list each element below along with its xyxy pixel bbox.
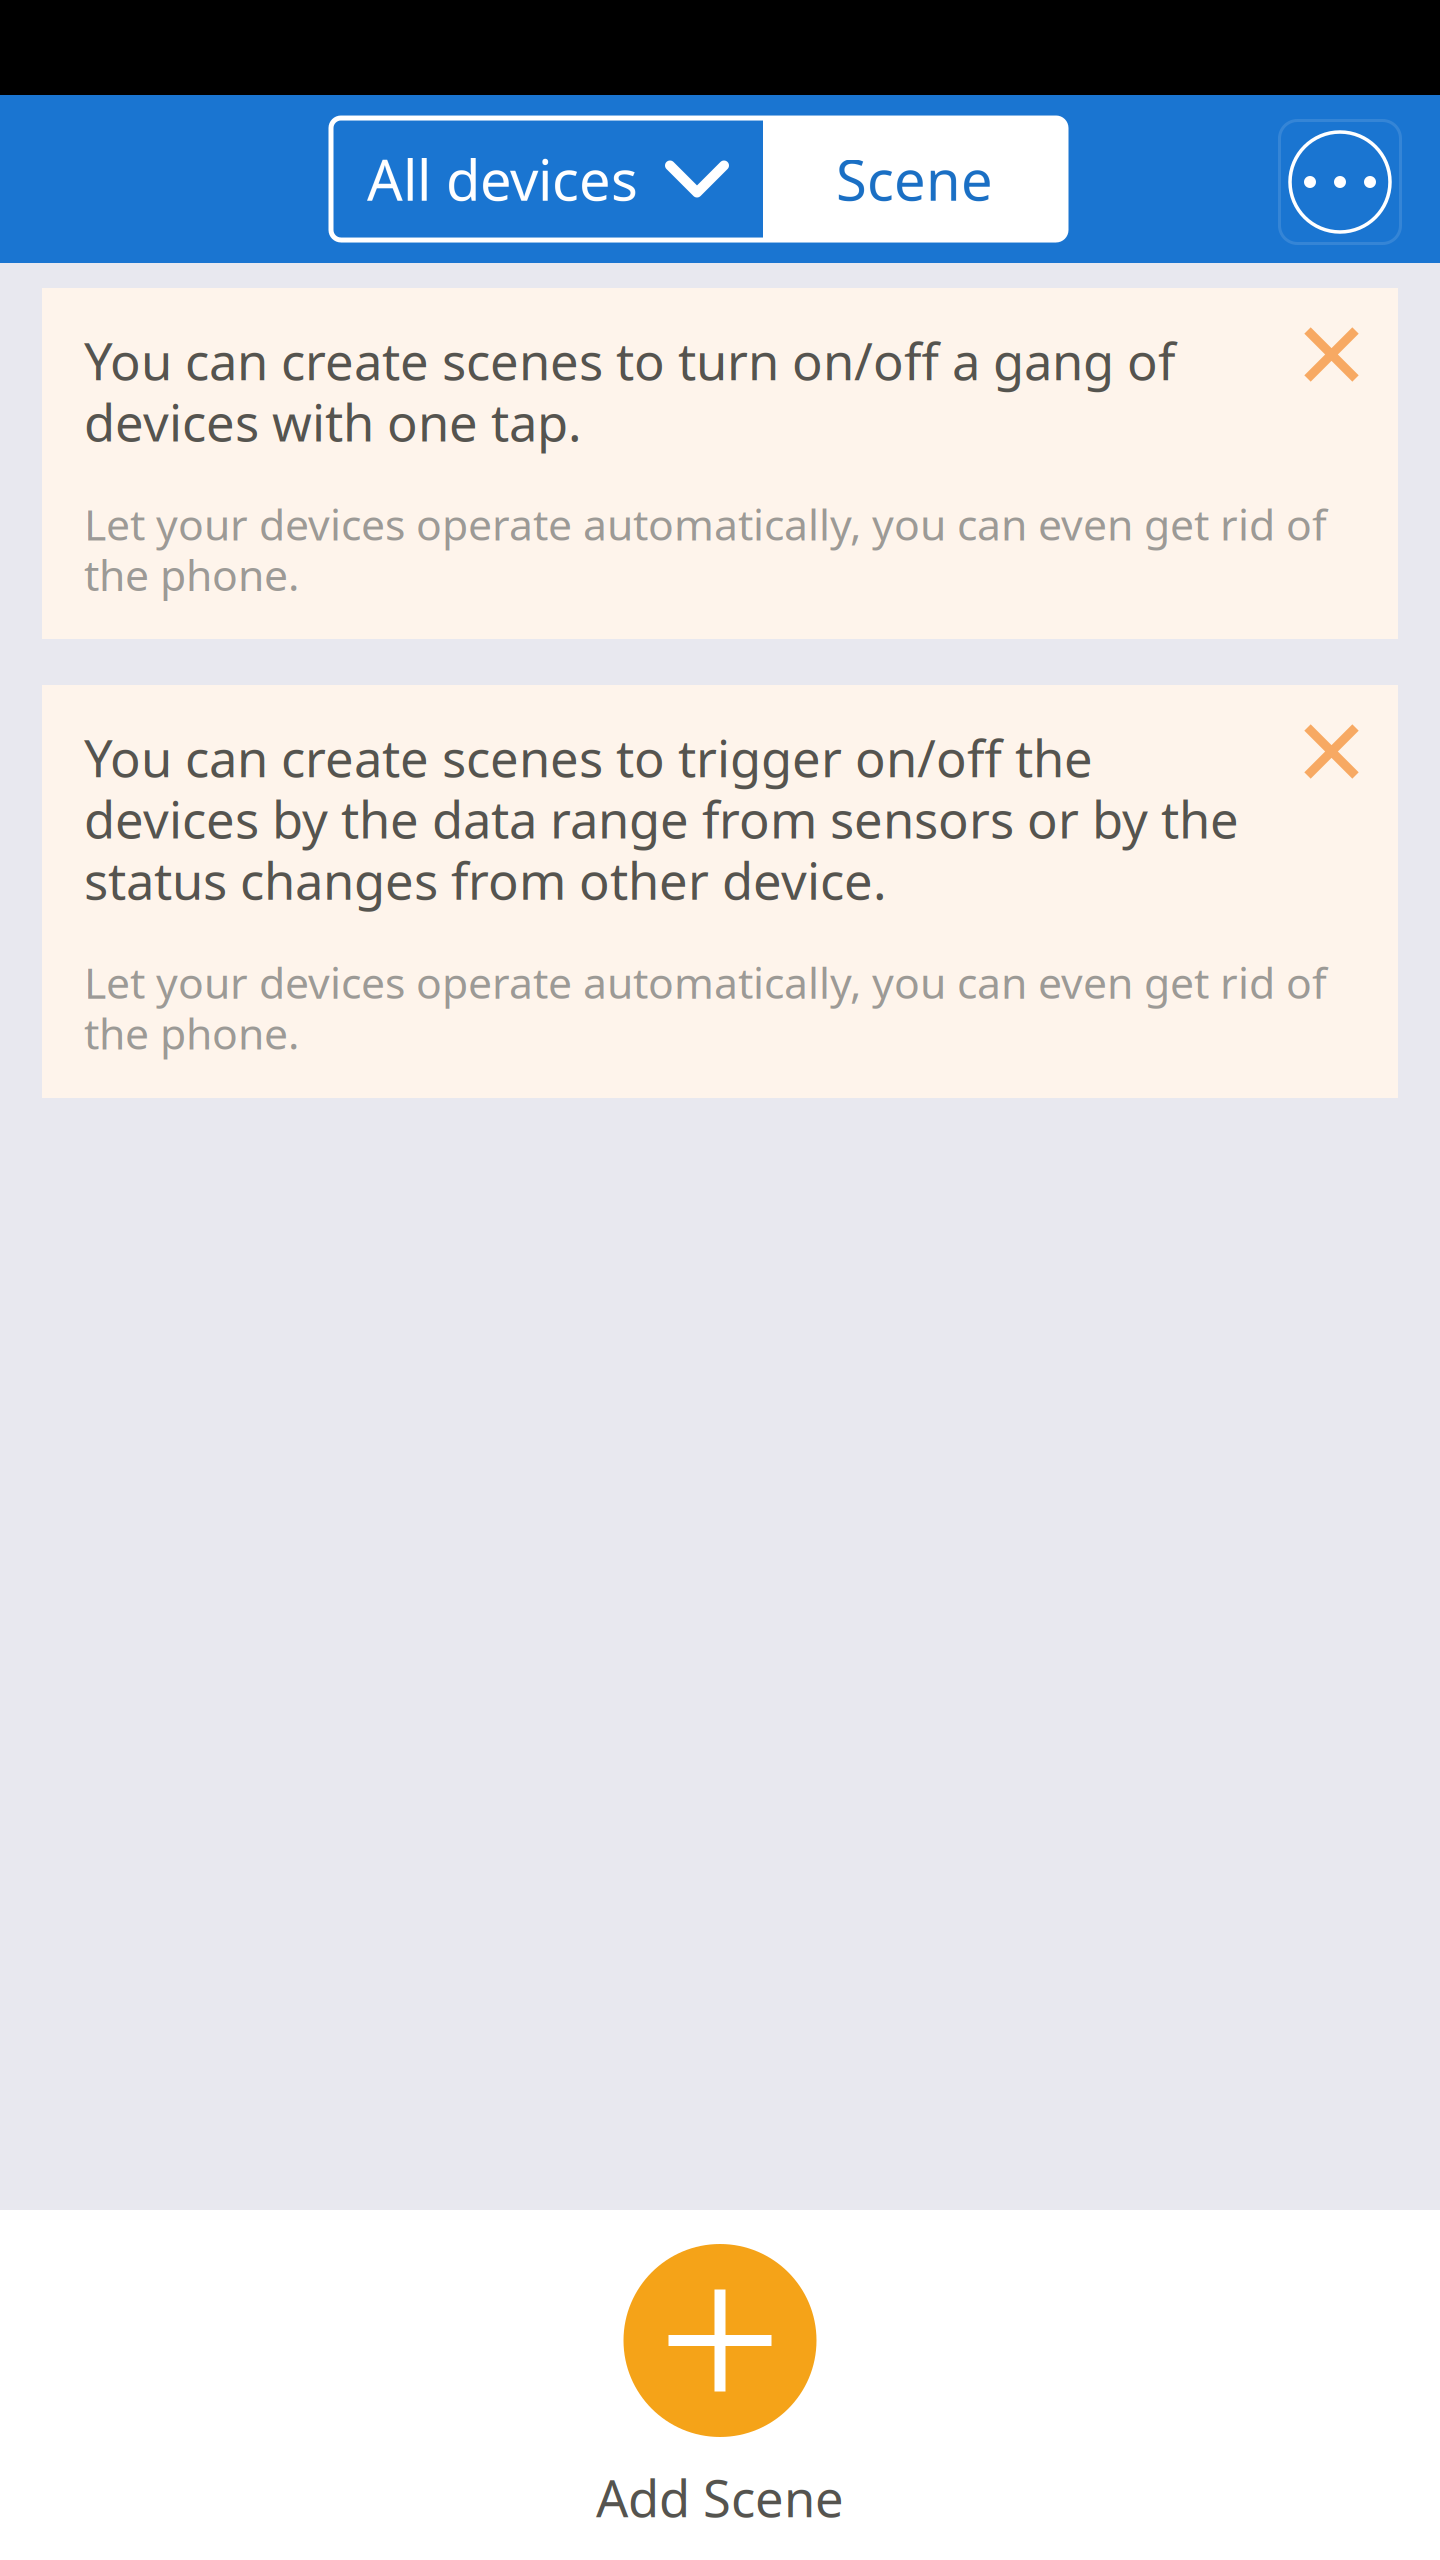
staticText: You can create scenes to trigger on/off … bbox=[84, 724, 1239, 914]
staticText: Add Scene bbox=[596, 2464, 844, 2531]
button[interactable]: Add Scene bbox=[0, 2210, 1440, 2560]
button[interactable]: All devices bbox=[331, 118, 763, 240]
staticText: Scene bbox=[836, 142, 993, 216]
button[interactable]: More options bbox=[1265, 95, 1415, 263]
staticText: Let your devices operate automatically, … bbox=[84, 496, 1327, 603]
staticText: All devices bbox=[367, 142, 638, 216]
staticText: Let your devices operate automatically, … bbox=[84, 954, 1327, 1061]
staticText: You can create scenes to turn on/off a g… bbox=[84, 327, 1175, 456]
button[interactable]: Dismiss bbox=[1265, 685, 1398, 818]
button[interactable]: Scene bbox=[763, 118, 1066, 240]
button[interactable]: Dismiss bbox=[1265, 288, 1398, 421]
